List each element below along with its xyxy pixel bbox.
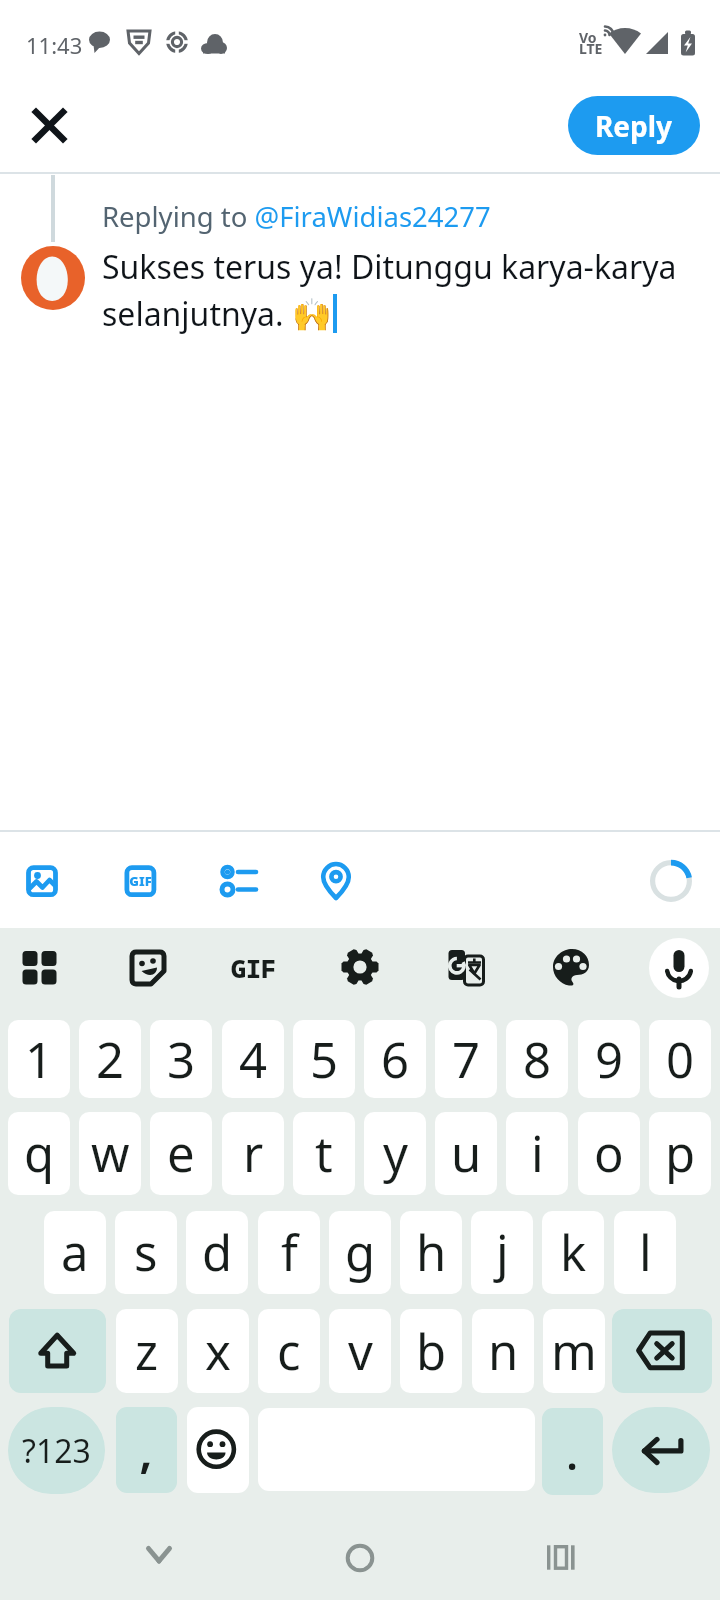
button[interactable]: Add photo xyxy=(10,849,74,913)
button[interactable]: r xyxy=(222,1112,284,1195)
button[interactable]: d xyxy=(186,1211,248,1294)
staticText: GIF xyxy=(231,951,277,985)
button[interactable]: Theme xyxy=(539,936,603,1000)
button[interactable]: l xyxy=(614,1211,676,1294)
button[interactable]: Shift xyxy=(9,1309,106,1393)
button[interactable]: Back xyxy=(127,1526,191,1590)
button[interactable]: g xyxy=(329,1211,391,1294)
staticText: s xyxy=(134,1219,158,1286)
button[interactable]: 8 xyxy=(506,1020,568,1098)
button[interactable]: v xyxy=(329,1309,391,1393)
button[interactable]: GIF xyxy=(222,936,286,1000)
button[interactable]: e xyxy=(150,1112,212,1195)
button[interactable]: Settings xyxy=(328,936,392,1000)
staticText: 0 xyxy=(666,1026,695,1093)
staticText: LTE xyxy=(579,39,603,58)
button[interactable]: 1 xyxy=(8,1020,70,1098)
button[interactable]: Stickers xyxy=(116,936,180,1000)
staticText: 1 xyxy=(25,1026,54,1093)
staticText: h xyxy=(416,1219,447,1286)
button[interactable]: b xyxy=(400,1309,462,1393)
button[interactable]: s xyxy=(115,1211,177,1294)
button[interactable]: n xyxy=(472,1309,534,1393)
button[interactable]: q xyxy=(8,1112,70,1195)
button[interactable]: Keyboard layouts xyxy=(7,936,71,1000)
staticText: 5 xyxy=(310,1026,339,1093)
staticText: p xyxy=(665,1120,696,1187)
staticText: r xyxy=(243,1120,264,1187)
staticText: Sukses terus ya! Ditunggu karya-karya se… xyxy=(102,245,677,336)
staticText: e xyxy=(167,1120,195,1187)
staticText: y xyxy=(383,1120,408,1187)
button[interactable]: u xyxy=(435,1112,497,1195)
staticText: 11:43 xyxy=(26,30,83,60)
staticText: b xyxy=(416,1318,447,1385)
staticText: Reply xyxy=(595,107,673,145)
button[interactable]: j xyxy=(471,1211,533,1294)
button[interactable]: Emoji xyxy=(187,1407,249,1493)
staticText: i xyxy=(531,1120,544,1187)
button[interactable]: f xyxy=(258,1211,320,1294)
button[interactable]: w xyxy=(79,1112,141,1195)
button[interactable]: Period xyxy=(542,1408,603,1495)
staticText: d xyxy=(202,1219,233,1286)
button[interactable]: Translate xyxy=(433,936,497,1000)
staticText: c xyxy=(277,1318,301,1385)
button[interactable]: 0 xyxy=(649,1020,711,1098)
staticText: 4 xyxy=(239,1026,268,1093)
button[interactable]: m xyxy=(543,1309,605,1393)
button[interactable]: Reply xyxy=(568,96,700,155)
staticText: 9 xyxy=(595,1026,624,1093)
button[interactable]: 4 xyxy=(222,1020,284,1098)
staticText: 7 xyxy=(452,1026,481,1093)
staticText: w xyxy=(91,1120,130,1187)
button[interactable]: t xyxy=(293,1112,355,1195)
button[interactable]: x xyxy=(187,1309,249,1393)
staticText: 3 xyxy=(167,1026,196,1093)
button[interactable]: Comma xyxy=(116,1407,177,1493)
staticText: GIF xyxy=(129,872,152,890)
staticText: u xyxy=(451,1120,482,1187)
staticText: Replying to @FiraWidias24277 xyxy=(102,198,491,235)
staticText: ?123 xyxy=(22,1429,91,1473)
staticText: v xyxy=(348,1318,373,1385)
button[interactable]: i xyxy=(506,1112,568,1195)
button[interactable]: 3 xyxy=(150,1020,212,1098)
button[interactable]: 2 xyxy=(79,1020,141,1098)
staticText: 8 xyxy=(523,1026,552,1093)
staticText: n xyxy=(488,1318,519,1385)
button[interactable]: Voice input xyxy=(649,938,709,998)
button[interactable]: a xyxy=(44,1211,106,1294)
staticText: 6 xyxy=(381,1026,410,1093)
staticText: z xyxy=(135,1318,159,1385)
button[interactable]: Recent apps xyxy=(529,1526,593,1590)
button[interactable]: o xyxy=(578,1112,640,1195)
button[interactable]: k xyxy=(542,1211,604,1294)
staticText: k xyxy=(560,1219,587,1286)
button[interactable]: ?123 xyxy=(8,1407,105,1494)
staticText: q xyxy=(24,1120,55,1187)
button[interactable]: p xyxy=(649,1112,711,1195)
button[interactable]: Poll xyxy=(206,849,270,913)
button[interactable]: c xyxy=(258,1309,320,1393)
staticText: Vo xyxy=(579,28,597,47)
staticText: j xyxy=(496,1219,509,1286)
staticText: o xyxy=(594,1120,624,1187)
button[interactable]: Home xyxy=(328,1526,392,1590)
button[interactable]: h xyxy=(400,1211,462,1294)
button[interactable]: 9 xyxy=(578,1020,640,1098)
staticText: g xyxy=(345,1219,376,1286)
button[interactable]: 6 xyxy=(364,1020,426,1098)
button[interactable]: 5 xyxy=(293,1020,355,1098)
button[interactable]: z xyxy=(116,1309,178,1393)
button[interactable]: 7 xyxy=(435,1020,497,1098)
button[interactable]: Close xyxy=(18,94,80,156)
button[interactable]: y xyxy=(364,1112,426,1195)
button[interactable]: Enter xyxy=(612,1407,710,1493)
button[interactable]: Backspace xyxy=(612,1309,712,1393)
button[interactable]: Add GIF xyxy=(108,849,172,913)
staticText: a xyxy=(61,1219,89,1286)
staticText: 2 xyxy=(96,1026,125,1093)
button[interactable]: Location xyxy=(304,849,368,913)
